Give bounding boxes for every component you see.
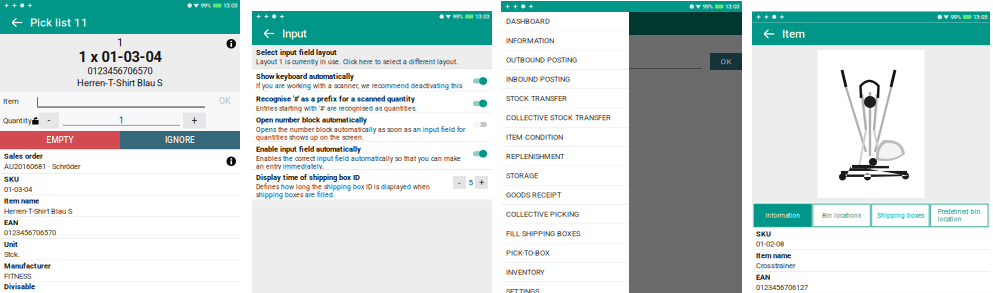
staticText: INFORMATION: [506, 36, 554, 45]
staticText: Recognise '#' as a prefix for a scanned …: [256, 94, 415, 103]
staticText: Stck.: [4, 250, 20, 259]
staticText: Item: [782, 27, 805, 41]
staticText: Item: [3, 96, 19, 106]
button[interactable]: COLLECTIVE PICKING: [501, 205, 629, 224]
button[interactable]: +: [475, 176, 488, 189]
staticText: Input: [282, 27, 307, 40]
button[interactable]: STOCK TRANSFER: [501, 89, 629, 108]
staticText: 0123456706127: [756, 283, 808, 292]
staticText: Information: [765, 212, 800, 219]
staticText: Opens the number block automatically as …: [256, 126, 465, 141]
button[interactable]: COLLECTIVE STOCK TRANSFER: [501, 108, 629, 128]
staticText: OK: [219, 96, 231, 106]
staticText: +: [191, 115, 197, 126]
staticText: 99%: [200, 2, 211, 9]
staticText: 13:03: [223, 2, 237, 9]
staticText: STOCK TRANSFER: [506, 94, 567, 103]
button[interactable]: OK: [212, 94, 238, 108]
staticText: EAN: [756, 273, 770, 282]
staticText: Display time of shipping box ID: [256, 173, 360, 182]
button[interactable]: Recognise '#' as a prefix for a scanned …: [472, 94, 488, 107]
button[interactable]: Bin locations: [813, 204, 870, 227]
staticText: 13:03: [725, 3, 739, 10]
button[interactable]: SETTINGS: [501, 282, 629, 293]
button[interactable]: Back: [256, 22, 282, 45]
staticText: -: [458, 177, 461, 188]
staticText: 01-03-04: [4, 185, 32, 194]
staticText: Select input field layout: [256, 48, 337, 57]
staticText: Unit: [4, 240, 18, 249]
staticText: Item name: [756, 251, 791, 260]
staticText: Predefined bin location: [938, 208, 981, 223]
button[interactable]: FILL SHIPPING BOXES: [501, 224, 629, 244]
button[interactable]: REPLENISHMENT: [501, 147, 629, 166]
staticText: 99%: [950, 13, 961, 21]
button[interactable]: EMPTY: [0, 131, 120, 149]
staticText: 1 x 01-03-04: [78, 48, 161, 66]
button[interactable]: ITEM CONDITION: [501, 128, 629, 147]
staticText: REPLENISHMENT: [506, 152, 564, 161]
staticText: OK: [720, 57, 731, 66]
staticText: 0123456706570: [87, 65, 152, 76]
staticText: Crosstrainer: [756, 261, 796, 270]
button[interactable]: Show keyboard automatically: [472, 72, 488, 85]
button[interactable]: -: [453, 176, 466, 189]
button[interactable]: INFORMATION: [501, 31, 629, 51]
staticText: 13:03: [973, 13, 987, 21]
staticText: Sales order: [4, 152, 43, 161]
staticText: Quantity: [3, 116, 32, 125]
staticText: SKU: [4, 175, 19, 184]
staticText: Defines how long the shipping box ID is …: [256, 183, 430, 199]
staticText: EAN: [4, 218, 18, 227]
button[interactable]: OK: [710, 53, 742, 70]
staticText: COLLECTIVE PICKING: [506, 210, 579, 219]
button[interactable]: IGNORE: [120, 131, 240, 149]
staticText: 5: [468, 178, 472, 187]
staticText: OUTBOUND POSTING: [506, 55, 577, 64]
staticText: FILL SHIPPING BOXES: [506, 229, 580, 238]
staticText: 1: [117, 36, 123, 49]
button[interactable]: Enable input field automatically: [472, 145, 488, 158]
button[interactable]: Shipping boxes: [872, 204, 929, 227]
staticText: DASHBOARD: [506, 17, 550, 26]
staticText: INVENTORY: [506, 268, 544, 276]
button[interactable]: DASHBOARD: [501, 12, 629, 31]
button[interactable]: Predefined bin location: [931, 204, 988, 227]
staticText: SETTINGS: [506, 287, 539, 293]
staticText: 1: [119, 115, 124, 125]
button[interactable]: INBOUND POSTING: [501, 70, 629, 89]
button[interactable]: STORAGE: [501, 166, 629, 186]
staticText: If you are working with a scanner, we re…: [256, 82, 462, 98]
staticText: Enables the correct input field automati…: [256, 155, 461, 170]
staticText: Item name: [4, 197, 39, 205]
button[interactable]: +: [183, 112, 206, 128]
button[interactable]: -: [39, 112, 59, 128]
staticText: Shipping boxes: [877, 212, 924, 219]
staticText: SKU: [756, 229, 771, 238]
button[interactable]: Open number block automatically: [472, 116, 488, 129]
button[interactable]: GOODS RECEIPT: [501, 186, 629, 205]
staticText: 99%: [702, 3, 713, 10]
staticText: -: [47, 115, 50, 126]
button[interactable]: INVENTORY: [501, 263, 629, 282]
button[interactable]: Information: [754, 204, 811, 227]
button[interactable]: Back: [4, 11, 30, 34]
button[interactable]: OUTBOUND POSTING: [501, 51, 629, 70]
staticText: INBOUND POSTING: [506, 75, 570, 83]
staticText: Herren-T-Shirt Blau S: [4, 207, 72, 215]
staticText: 0123456706570: [4, 228, 56, 237]
button[interactable]: PICK-TO-BOX: [501, 244, 629, 263]
staticText: Manufacturer: [4, 262, 51, 270]
staticText: Enable input field automatically: [256, 145, 361, 153]
button[interactable]: Item info: [226, 34, 240, 48]
staticText: Divisable: [4, 282, 35, 291]
staticText: ITEM CONDITION: [506, 133, 563, 141]
staticText: 13:03: [475, 13, 489, 20]
staticText: Layout 1 is currently in use. Click here…: [256, 58, 458, 66]
staticText: Show keyboard automatically: [256, 72, 354, 81]
staticText: 99%: [452, 13, 463, 20]
staticText: Open number block automatically: [256, 116, 367, 124]
button[interactable]: Back: [756, 22, 782, 45]
staticText: PICK-TO-BOX: [506, 248, 550, 257]
staticText: STORAGE: [506, 171, 538, 180]
